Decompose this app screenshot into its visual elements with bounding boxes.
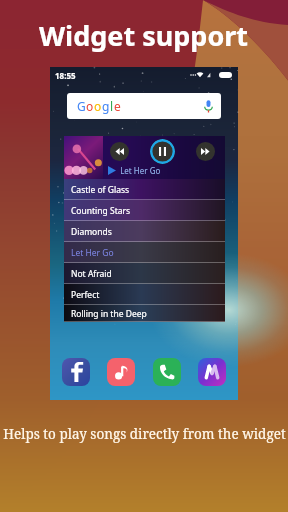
button[interactable]: Facebook bbox=[62, 358, 90, 386]
button[interactable]: Phone bbox=[153, 358, 181, 386]
staticText: Rolling in the Deep bbox=[71, 308, 147, 320]
button[interactable]: Music bbox=[107, 358, 135, 386]
staticText: G bbox=[77, 98, 86, 114]
staticText: g bbox=[102, 98, 110, 114]
button[interactable]: G bbox=[67, 93, 221, 119]
staticText: e bbox=[114, 98, 121, 114]
staticText: o bbox=[94, 98, 102, 114]
staticText: Not Afraid bbox=[71, 268, 112, 280]
button[interactable]: Castle of Glass bbox=[64, 179, 225, 200]
button[interactable]: Diamonds bbox=[64, 221, 225, 242]
button[interactable]: Counting Stars bbox=[64, 200, 225, 221]
button[interactable]: Pause bbox=[150, 139, 175, 164]
staticText: Diamonds bbox=[71, 226, 112, 238]
staticText: Counting Stars bbox=[71, 205, 131, 217]
button[interactable]: Rolling in the Deep bbox=[64, 305, 225, 322]
staticText: Helps to play songs directly from the wi… bbox=[3, 425, 286, 443]
button[interactable]: Not Afraid bbox=[64, 263, 225, 284]
button[interactable]: Let Her Go bbox=[64, 242, 225, 263]
button[interactable]: Perfect bbox=[64, 284, 225, 305]
staticText: l bbox=[110, 98, 114, 114]
staticText: Let Her Go bbox=[116, 165, 161, 176]
button[interactable]: Next bbox=[196, 142, 215, 161]
staticText: o bbox=[86, 98, 94, 114]
staticText: 18:55 bbox=[55, 70, 76, 81]
staticText: Castle of Glass bbox=[71, 184, 130, 196]
staticText: Widget support bbox=[39, 17, 249, 54]
staticText: Let Her Go bbox=[71, 247, 114, 259]
button[interactable]: Music player bbox=[198, 358, 226, 386]
button[interactable]: Previous bbox=[110, 142, 129, 161]
staticText: Perfect bbox=[71, 289, 100, 301]
